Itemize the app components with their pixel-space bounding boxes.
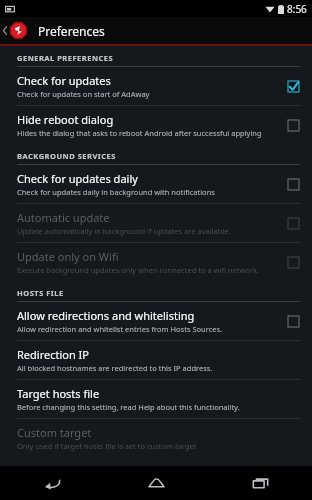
button[interactable]: Recent apps	[208, 466, 312, 500]
staticText: GENERAL PREFERENCES	[17, 53, 114, 63]
button[interactable]: Allow redirections and whitelisting	[0, 302, 312, 340]
button[interactable]: Checked	[287, 80, 300, 93]
staticText: Before changing this setting, read Help …	[17, 402, 240, 412]
button[interactable]: Back	[0, 466, 104, 500]
button[interactable]: Check for updates	[0, 67, 312, 105]
staticText: Update automatically in background if up…	[17, 226, 231, 236]
staticText: BACKGROUND SERVICES	[17, 151, 116, 161]
button[interactable]: Unchecked	[287, 119, 300, 132]
button[interactable]: Custom target	[0, 419, 312, 457]
staticText: Check for updates on start of AdAway	[17, 89, 150, 99]
staticText: Only used if target hosts file is set to…	[17, 441, 197, 451]
staticText: Hides the dialog that asks to reboot And…	[17, 128, 262, 138]
button[interactable]: Update only on Wifi	[0, 243, 312, 281]
staticText: Custom target	[17, 425, 92, 440]
button[interactable]: Home	[104, 466, 208, 500]
staticText: Preferences	[38, 23, 105, 39]
button[interactable]: Target hosts file	[0, 380, 312, 418]
staticText: Execute background updates only when con…	[17, 265, 259, 275]
staticText: 8:56	[287, 2, 307, 16]
staticText: Target hosts file	[17, 386, 100, 401]
button[interactable]: Unchecked	[287, 256, 300, 269]
staticText: Check for updates	[17, 73, 111, 88]
staticText: HOSTS FILE	[17, 288, 64, 298]
button[interactable]: Hide reboot dialog	[0, 106, 312, 144]
staticText: Allow redirection and whitelist entries …	[17, 324, 223, 334]
staticText: Update only on Wifi	[17, 249, 119, 264]
button[interactable]: Check for updates daily	[0, 165, 312, 203]
staticText: Hide reboot dialog	[17, 112, 114, 127]
button[interactable]: Automatic update	[0, 204, 312, 242]
staticText: Check for updates daily in background wi…	[17, 187, 215, 197]
button[interactable]: Navigate up	[0, 21, 32, 40]
staticText: All blocked hostnames are redirected to …	[17, 363, 213, 373]
button[interactable]: Unchecked	[287, 315, 300, 328]
button[interactable]: Unchecked	[287, 217, 300, 230]
staticText: Check for updates daily	[17, 171, 138, 186]
button[interactable]: Redirection IP	[0, 341, 312, 379]
staticText: Automatic update	[17, 210, 110, 225]
button[interactable]: Unchecked	[287, 178, 300, 191]
staticText: Redirection IP	[17, 347, 89, 362]
staticText: Allow redirections and whitelisting	[17, 308, 195, 323]
